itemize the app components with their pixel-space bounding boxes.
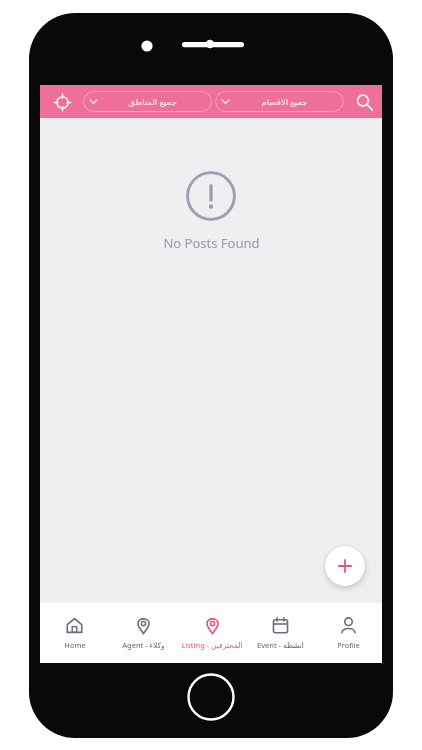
button[interactable]: Listing - المحترفين [178,609,246,657]
staticText: Event - انشطه [257,640,304,650]
button[interactable]: Agent - وكلاء [109,609,178,657]
button[interactable]: جميع المناطق [83,91,212,112]
staticText: Listing - المحترفين [181,640,243,650]
staticText: جميع المناطق [128,96,177,108]
staticText: Agent - وكلاء [122,640,165,650]
button[interactable]: Search [349,87,379,117]
button[interactable]: جميع الاقسام [215,91,344,112]
staticText: جميع الاقسام [261,96,308,108]
staticText: Home [64,640,86,650]
button[interactable]: Locate me [48,88,76,116]
button[interactable]: Event - انشطه [246,609,314,657]
button[interactable]: Add new listing [325,546,365,586]
staticText: Profile [337,640,360,650]
button[interactable]: Profile [314,609,382,657]
staticText: No Posts Found [163,234,260,252]
button[interactable]: Home [40,609,109,657]
